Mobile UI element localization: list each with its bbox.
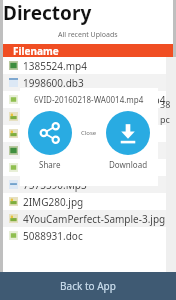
button[interactable]: 1750 2.jpg [3,125,173,142]
staticText: Back to App [60,279,116,293]
button[interactable]: Back to App [0,272,176,300]
button[interactable]: 2IMG280.jpg [3,193,173,210]
staticText: All recent Uploads [58,30,118,40]
button[interactable]: 1385524.mp4 [3,57,173,74]
staticText: Close [81,129,97,137]
staticText: 1798.mp4 [23,144,70,158]
staticText: 7575590.Mp3 [23,178,87,192]
staticText: 6VID-20160218-WA0014.mp4 [34,94,144,105]
button[interactable]: 1798.mp4 [3,142,173,159]
staticText: 2IMG280.jpg [23,195,84,209]
button[interactable]: Close [81,129,97,137]
staticText: 38 [160,98,171,110]
staticText: pc [160,113,170,125]
staticText: 4YouCamPerfect-Sample-3.jpg [23,212,166,226]
other: Download [106,111,150,155]
staticText: 1385524.mp4 [23,59,87,73]
staticText: 5088931.doc [23,229,83,243]
staticText: Filename [13,44,59,57]
button[interactable]: Download [106,111,150,170]
button[interactable]: 5088931.doc [3,227,173,244]
staticText: Share [39,159,61,170]
button[interactable]: 1998600.db3 [3,74,173,91]
staticText: Download [109,159,148,170]
staticText: 1998600.db3 [23,76,84,90]
button[interactable]: 4YouCamPerfect-Sample-3.jpg [3,210,173,227]
staticText: 1750 2.jpg [23,127,72,141]
button[interactable]: 1861516.pdf [3,159,173,176]
staticText: Directory Contents [3,0,173,28]
button[interactable]: Share [28,111,72,170]
staticText: 1738.jpg [23,110,64,124]
button[interactable]: 16VID-20160218-WA0014.mp4 [3,91,173,108]
other: Share [28,111,72,155]
button[interactable]: 7575590.Mp3 [3,176,173,193]
staticText: 1861516.pdf [23,161,82,175]
staticText: 16VID-20160218-WA0014.mp4 [23,93,166,107]
button[interactable]: 1738.jpg [3,108,173,125]
